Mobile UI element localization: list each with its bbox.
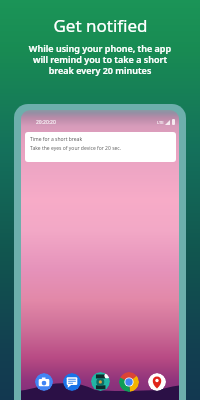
button[interactable]: Messages: [63, 373, 81, 391]
button[interactable]: Maps: [148, 373, 166, 391]
staticText: Time for a short break: [30, 136, 83, 143]
staticText: While using your phone, the app will rem…: [0, 42, 200, 76]
staticText: 20:20:20: [36, 119, 56, 126]
button[interactable]: Camera: [35, 373, 53, 391]
button[interactable]: Time for a short break: [25, 132, 176, 162]
button[interactable]: Break reminder: [91, 372, 110, 391]
staticText: LTE: [157, 120, 164, 125]
button[interactable]: Chrome: [119, 372, 139, 392]
staticText: Take the eyes of your device for 20 sec.: [30, 145, 122, 152]
staticText: Get notified: [53, 14, 148, 37]
